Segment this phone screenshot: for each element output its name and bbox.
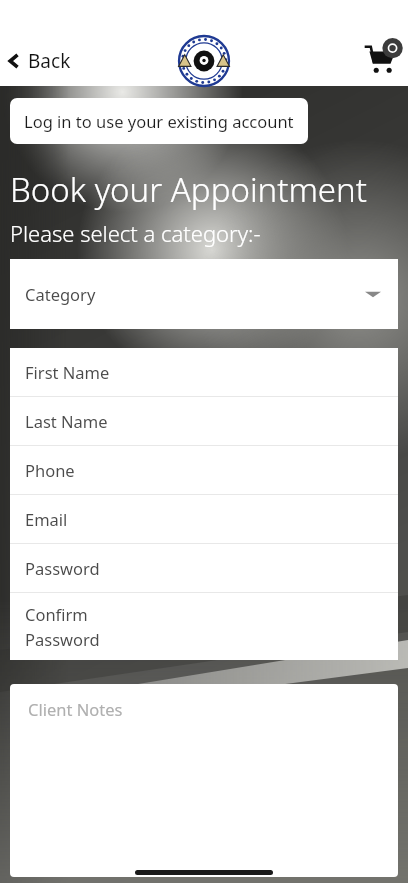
staticText: Client Notes [28, 698, 123, 720]
button[interactable]: Client Notes [10, 684, 398, 877]
button[interactable]: Last Name [10, 397, 398, 445]
button[interactable]: Email [10, 495, 398, 543]
staticText: First Name [25, 361, 110, 383]
button[interactable]: Cart, 0 items [354, 32, 408, 86]
staticText: Book your Appointment [10, 167, 367, 212]
button[interactable]: Category [10, 259, 398, 329]
staticText: Category [25, 283, 96, 305]
button[interactable]: Back [0, 42, 83, 80]
staticText: Last Name [25, 410, 108, 432]
button[interactable]: Password [10, 544, 398, 592]
staticText: Phone [25, 459, 75, 481]
staticText: Password [25, 557, 100, 579]
staticText: Password [25, 628, 100, 650]
button[interactable]: Confirm [10, 593, 398, 660]
button[interactable]: First Name [10, 348, 398, 396]
staticText: Back [28, 48, 71, 74]
staticText: Email [25, 508, 68, 530]
button[interactable]: Log in to use your existing account [10, 98, 308, 144]
staticText: Confirm [25, 603, 88, 625]
button[interactable]: Phone [10, 446, 398, 494]
staticText: Log in to use your existing account [24, 110, 294, 132]
staticText: Please select a category:- [10, 218, 261, 248]
